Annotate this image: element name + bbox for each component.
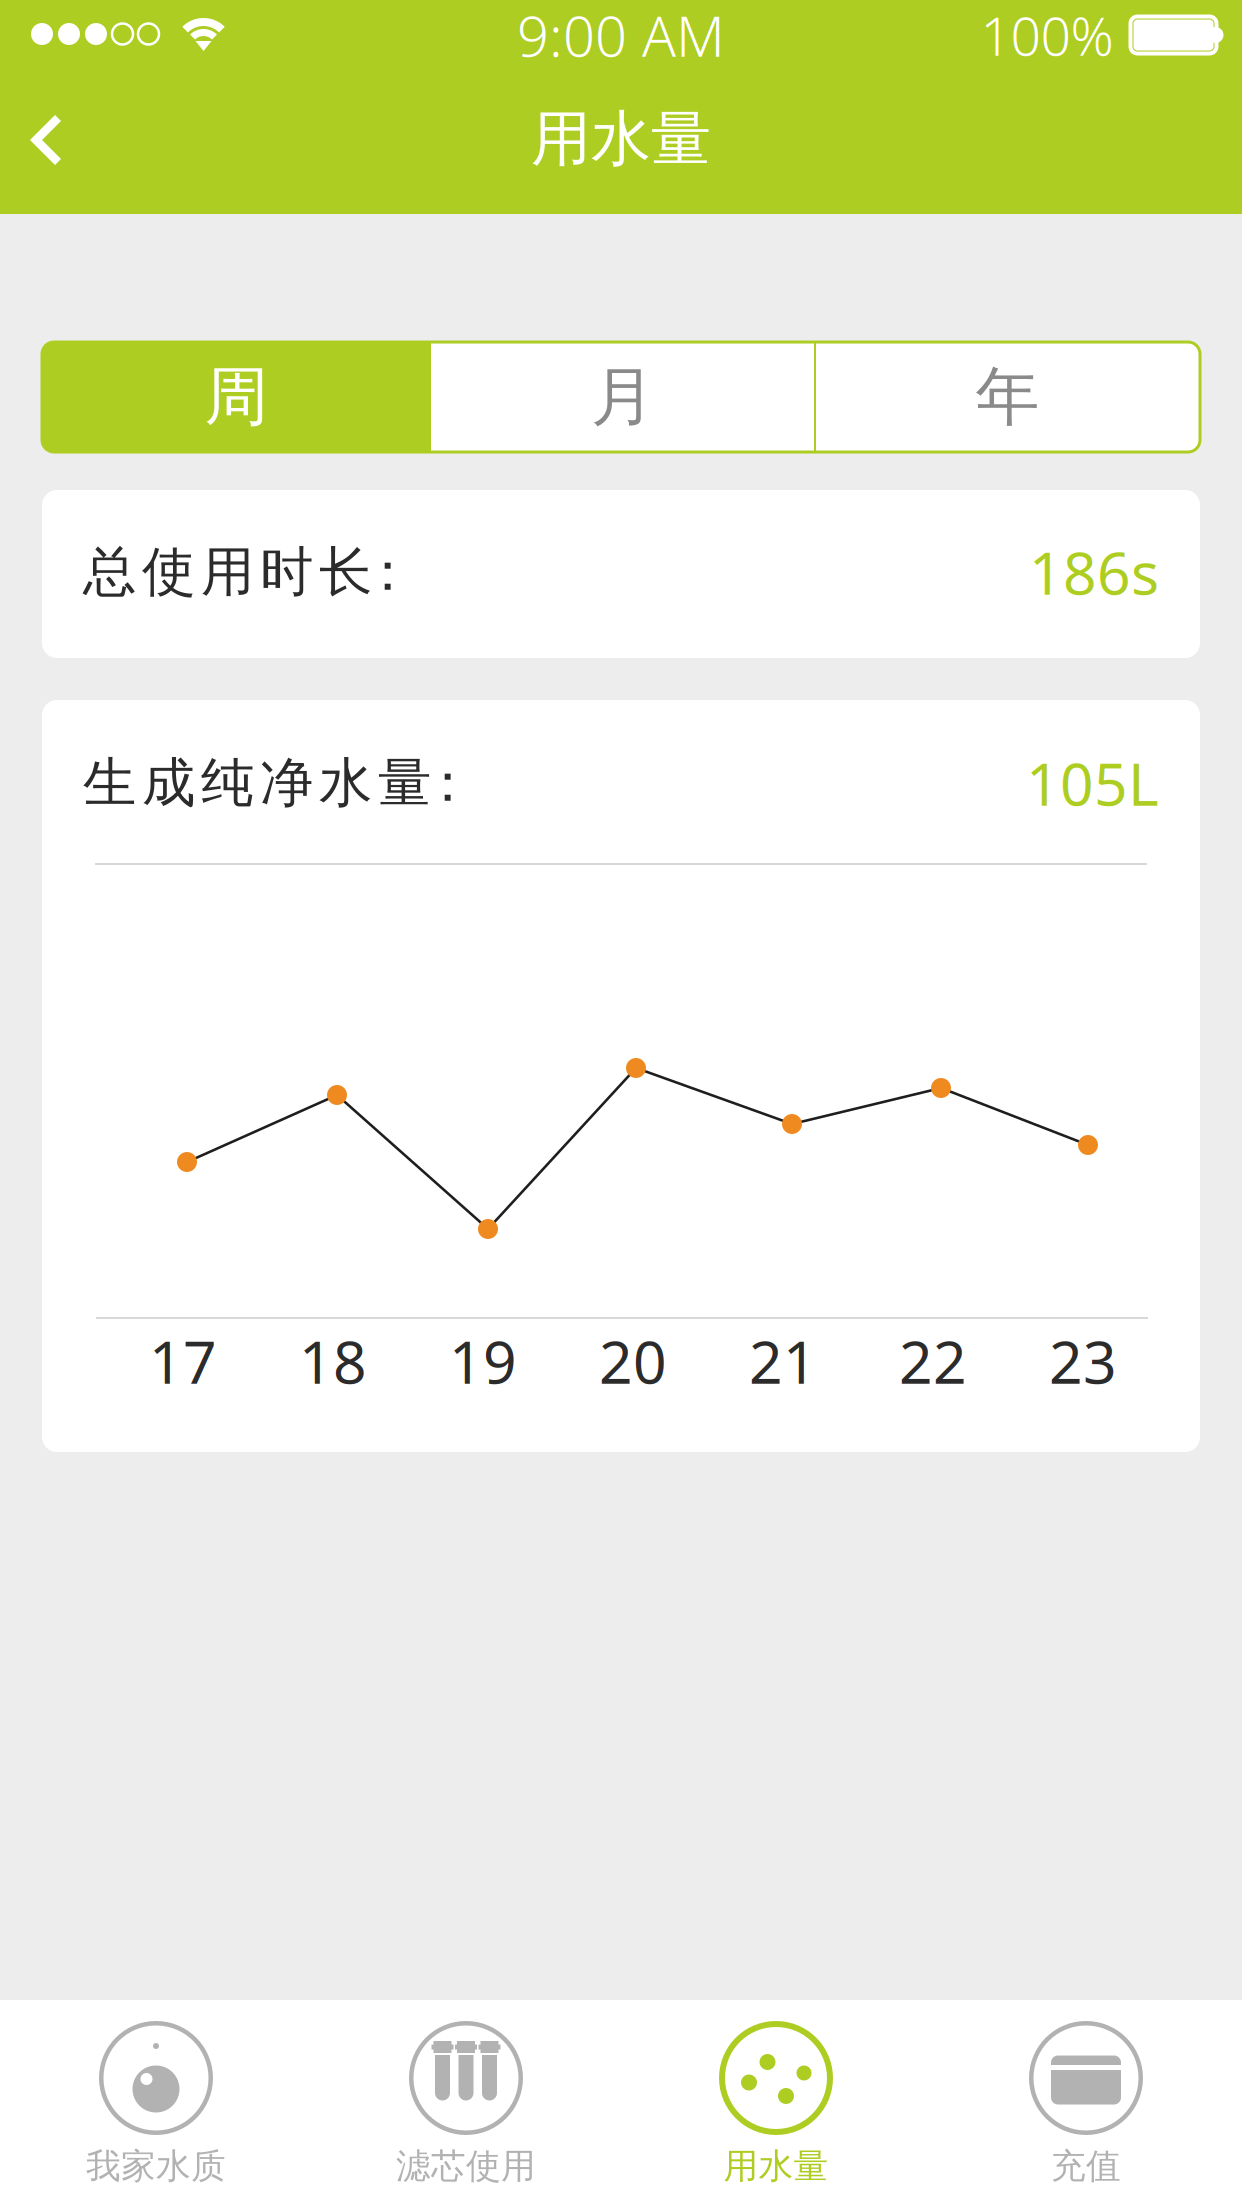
staticText: 总使用时长 bbox=[83, 539, 372, 605]
staticText: 用水量 bbox=[723, 2145, 828, 2188]
button[interactable]: 充值 bbox=[931, 2000, 1241, 2208]
staticText: 生成纯净水量 bbox=[83, 750, 431, 816]
staticText: 周 bbox=[204, 358, 268, 436]
staticText: 21 bbox=[749, 1322, 817, 1400]
staticText: 20 bbox=[599, 1322, 667, 1400]
staticText: 19 bbox=[449, 1322, 517, 1400]
staticText: ： bbox=[361, 539, 414, 605]
staticText: 9:00 AM bbox=[517, 0, 725, 72]
button[interactable]: 周 bbox=[42, 342, 431, 452]
button[interactable]: 月 bbox=[431, 342, 815, 452]
staticText: 充值 bbox=[1051, 2145, 1121, 2188]
button[interactable]: Back bbox=[0, 88, 122, 192]
staticText: 22 bbox=[899, 1322, 967, 1400]
button[interactable]: 年 bbox=[815, 342, 1200, 452]
staticText: ： bbox=[421, 750, 474, 816]
staticText: 我家水质 bbox=[86, 2145, 226, 2188]
staticText: 滤芯使用 bbox=[396, 2145, 536, 2188]
staticText: 18 bbox=[299, 1322, 367, 1400]
staticText: 105L bbox=[1026, 744, 1159, 822]
button[interactable]: 用水量 bbox=[621, 2000, 931, 2208]
staticText: 186s bbox=[1029, 533, 1159, 611]
staticText: 17 bbox=[149, 1322, 217, 1400]
staticText: 月 bbox=[591, 358, 655, 436]
staticText: 用水量 bbox=[531, 102, 711, 176]
staticText: 100% bbox=[980, 0, 1113, 70]
button[interactable]: 我家水质 bbox=[1, 2000, 311, 2208]
button[interactable]: 滤芯使用 bbox=[311, 2000, 621, 2208]
staticText: 年 bbox=[975, 358, 1039, 436]
staticText: 23 bbox=[1049, 1322, 1117, 1400]
